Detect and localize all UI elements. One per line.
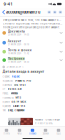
staticText: с нового устройства. Ниже перечислены се… [3, 22, 62, 25]
staticText: Система: [2, 84, 12, 86]
staticText: Настройки [8, 57, 25, 60]
button[interactable]: Ещё [52, 126, 65, 137]
staticText: IP: [2, 88, 6, 91]
button[interactable]: Archive [52, 8, 58, 16]
button[interactable]: Чаты [13, 126, 26, 137]
staticText: Яндекс [12, 75, 20, 78]
staticText: 85.140.3.21 [8, 88, 22, 91]
staticText: 27 июля 2024 г. [6, 65, 24, 68]
staticText: Уведомляем вас о том, что в ваш аккаунт … [3, 18, 62, 22]
button[interactable]: Почта [0, 126, 13, 137]
staticText: MTS [16, 96, 22, 99]
staticText: Safari 17.4 [13, 105, 26, 107]
staticText: Реклама · Отель у моря [35, 118, 60, 121]
staticText: 17 июля 2024 · 08:30 [8, 60, 29, 63]
staticText: Браузер: [2, 105, 11, 107]
button[interactable]: Back [1, 8, 6, 16]
staticText: Облако [29, 132, 36, 135]
staticText: Почта [3, 132, 9, 135]
staticText: iPhone 15 Pro [15, 79, 31, 82]
staticText: Провайдер: [2, 96, 14, 99]
button[interactable]: Почта и звонки [0, 47, 65, 56]
staticText: Ещё [56, 132, 60, 135]
button[interactable]: Аккаунт [0, 38, 65, 47]
staticText: от 4 900 ₽ за ночь [35, 122, 53, 125]
staticText: Детали входа в аккаунт [2, 70, 44, 74]
staticText: Почта и звонки [8, 49, 32, 52]
staticText: Город: [2, 92, 9, 95]
staticText: Чаты [17, 132, 22, 135]
button[interactable]: Настройки [0, 56, 65, 64]
staticText: Звонки [42, 132, 48, 135]
staticText: Устройство: [2, 79, 13, 82]
staticText: Тип: [2, 109, 6, 112]
button[interactable]: Облако [26, 126, 39, 137]
staticText: 08:14 МСК [12, 100, 27, 103]
staticText: iOS 17.5.1 [14, 84, 26, 86]
button[interactable]: More actions [58, 8, 63, 16]
staticText: Сервис: [2, 75, 10, 78]
button[interactable]: Документы [0, 28, 65, 38]
staticText: 21 июля 2024 · 09:18 [8, 43, 29, 46]
staticText: Москва [11, 92, 18, 95]
staticText: account@domain.ru [6, 10, 40, 15]
staticText: 9:41 [3, 2, 12, 6]
staticText: Документы [8, 30, 25, 33]
button[interactable]: Advertisement [0, 117, 65, 126]
button[interactable]: Report spam [46, 8, 52, 16]
button[interactable]: Звонки [39, 126, 52, 137]
staticText: Аккаунт [8, 40, 21, 43]
staticText: Время: [2, 100, 10, 103]
staticText: последних успешных входов в этот аккаунт… [3, 26, 60, 29]
staticText: 23 июля 2024 · 14:05 [8, 33, 29, 36]
staticText: Вход с паролем [8, 109, 25, 112]
staticText: 19 июля 2024 · 11:42 [8, 52, 29, 55]
